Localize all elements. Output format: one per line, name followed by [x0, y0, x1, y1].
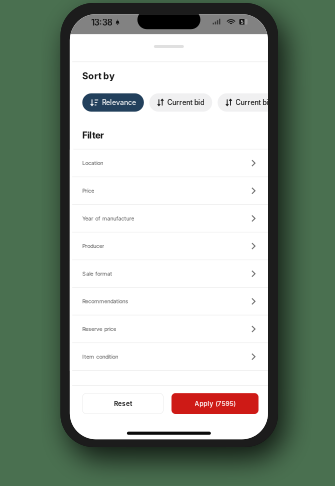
- staticText: 5: [241, 19, 244, 25]
- button[interactable]: Current bid: [218, 93, 280, 112]
- button[interactable]: Current bid: [149, 93, 212, 112]
- staticText: Current bid: [167, 98, 204, 107]
- staticText: Sort by: [82, 70, 114, 81]
- button[interactable]: Year of manufacture: [70, 205, 268, 233]
- staticText: Current bid: [235, 98, 272, 107]
- button[interactable]: Apply (7595): [171, 393, 258, 414]
- staticText: Price: [82, 187, 94, 194]
- button[interactable]: Relevance: [82, 93, 144, 112]
- staticText: Recommendations: [82, 298, 128, 305]
- staticText: Filter: [82, 130, 104, 141]
- button[interactable]: Producer: [70, 233, 268, 260]
- staticText: Item condition: [82, 353, 118, 360]
- button[interactable]: Recommendations: [70, 288, 268, 315]
- button[interactable]: Sale format: [70, 260, 268, 288]
- staticText: Producer: [82, 243, 104, 249]
- button[interactable]: Reserve price: [70, 316, 268, 343]
- button[interactable]: Item condition: [70, 343, 268, 371]
- staticText: Reset: [114, 400, 132, 407]
- button[interactable]: Reset: [82, 393, 163, 414]
- staticText: Relevance: [102, 98, 136, 107]
- staticText: Apply (7595): [194, 400, 235, 407]
- staticText: 13:38: [91, 18, 112, 28]
- staticText: Location: [82, 160, 103, 166]
- staticText: Reserve price: [82, 326, 116, 332]
- staticText: Year of manufacture: [82, 215, 134, 222]
- staticText: Sale format: [82, 270, 112, 277]
- button[interactable]: Location: [70, 150, 268, 177]
- button[interactable]: Price: [70, 177, 268, 205]
